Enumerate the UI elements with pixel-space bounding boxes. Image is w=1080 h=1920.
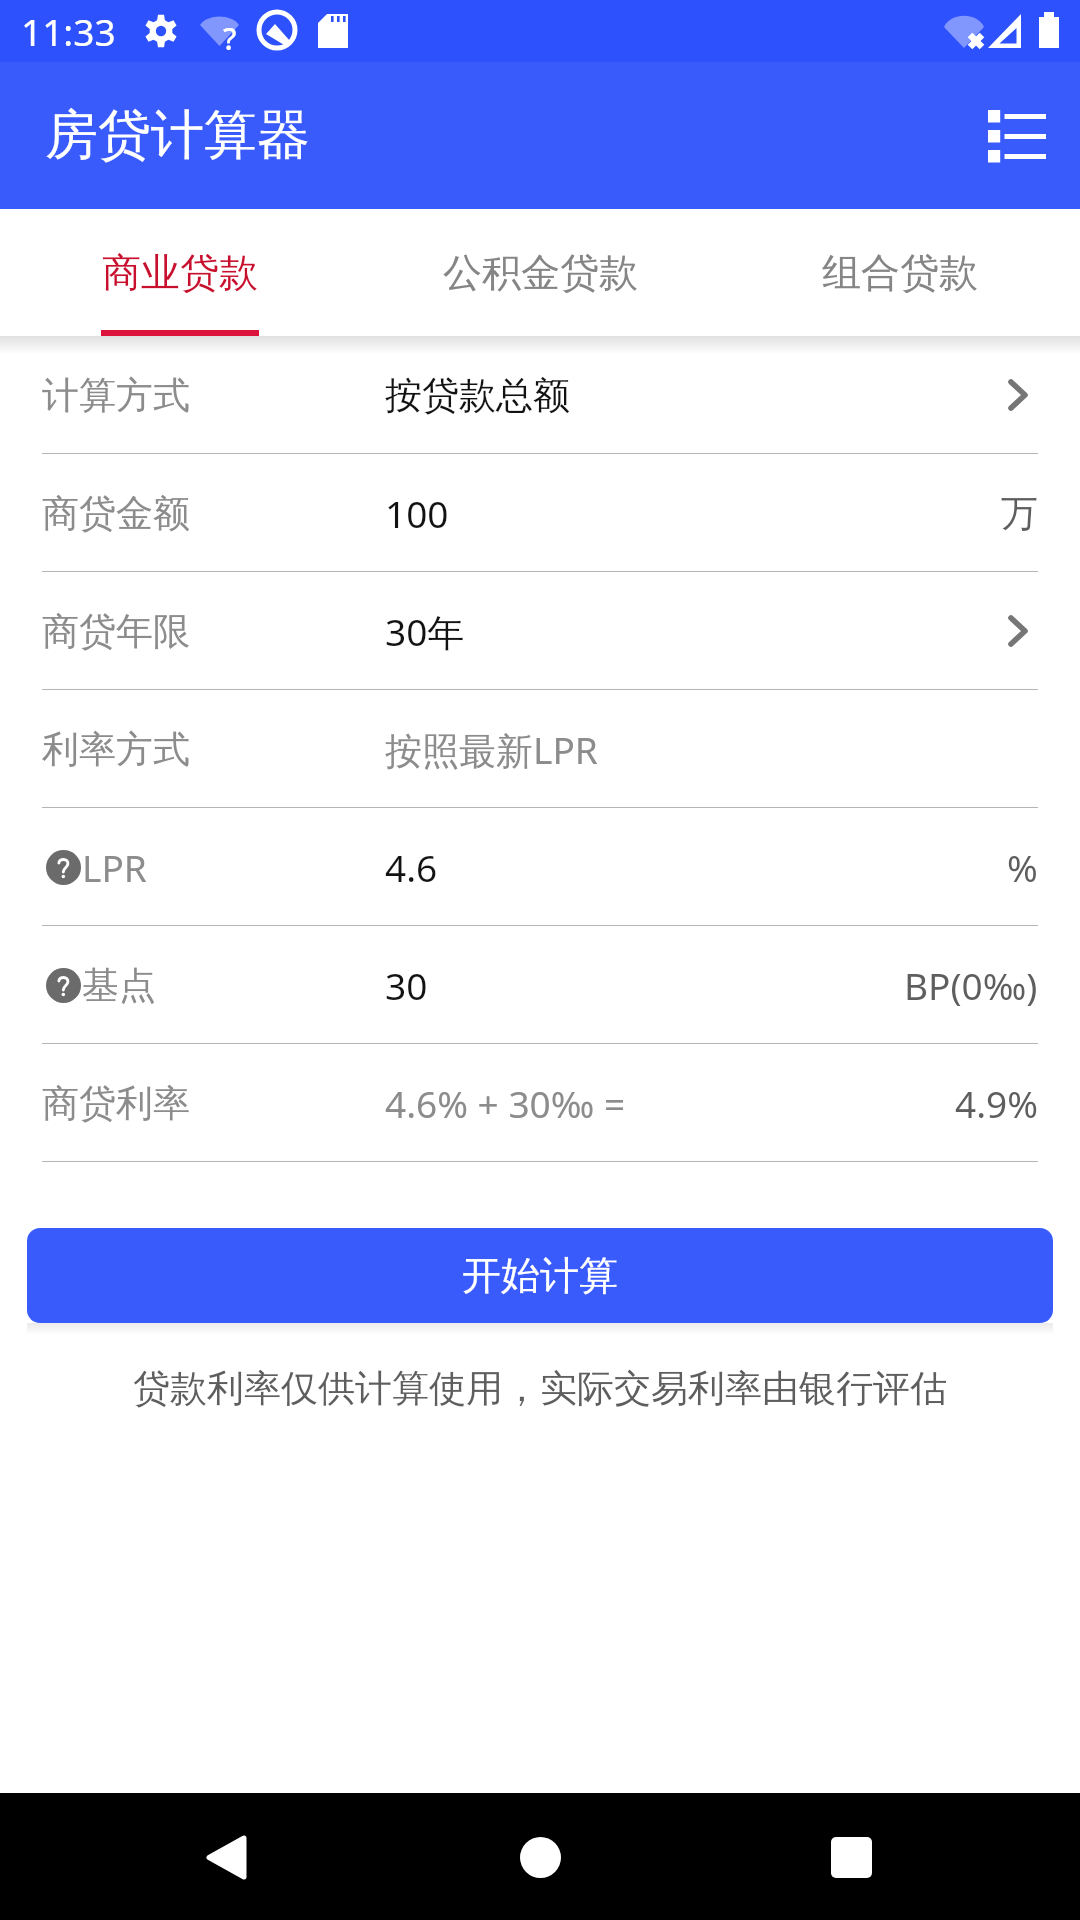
staticText: 利率方式: [42, 726, 190, 773]
staticText: 房贷计算器: [45, 102, 310, 169]
button[interactable]: 基点: [0, 926, 1080, 1044]
staticText: BP(0‰): [904, 960, 1038, 1010]
button[interactable]: 商贷年限: [0, 572, 1080, 690]
staticText: 计算方式: [42, 372, 190, 419]
staticText: 商贷金额: [42, 490, 190, 537]
staticText: 商业贷款: [102, 248, 258, 297]
staticText: 开始计算: [462, 1251, 618, 1300]
button[interactable]: LPR: [0, 808, 1080, 926]
staticText: 按照最新LPR: [385, 724, 598, 775]
button[interactable]: 开始计算: [27, 1228, 1053, 1323]
button[interactable]: Home: [484, 1801, 596, 1913]
staticText: %: [1007, 842, 1038, 892]
button[interactable]: 利率方式: [0, 690, 1080, 808]
staticText: ?: [223, 18, 237, 59]
staticText: 组合贷款: [822, 248, 978, 297]
staticText: 4.9%: [955, 1078, 1038, 1128]
staticText: 按贷款总额: [385, 372, 570, 419]
staticText: 基点: [82, 962, 156, 1009]
staticText: LPR: [82, 842, 147, 892]
button[interactable]: 商贷金额: [0, 454, 1080, 572]
button[interactable]: 计算方式: [0, 336, 1080, 454]
staticText: 30: [385, 960, 428, 1010]
staticText: 100: [385, 488, 449, 538]
button[interactable]: Recent apps: [795, 1801, 907, 1913]
button[interactable]: 公积金贷款: [360, 209, 720, 336]
button[interactable]: 商业贷款: [0, 209, 360, 336]
staticText: 商贷年限: [42, 608, 190, 655]
staticText: 商贷利率: [42, 1080, 190, 1127]
staticText: 4.6% + 30‰ =: [385, 1078, 626, 1128]
button[interactable]: Back: [169, 1801, 281, 1913]
button[interactable]: 组合贷款: [720, 209, 1080, 336]
staticText: 万: [1001, 490, 1038, 537]
staticText: 贷款利率仅供计算使用，实际交易利率由银行评估: [0, 1365, 1080, 1412]
staticText: 公积金贷款: [443, 248, 638, 297]
staticText: 4.6: [385, 842, 438, 892]
staticText: 11:33: [21, 6, 116, 56]
staticText: 30年: [385, 606, 465, 657]
button[interactable]: 商贷利率: [0, 1044, 1080, 1162]
button[interactable]: List options: [969, 88, 1065, 184]
